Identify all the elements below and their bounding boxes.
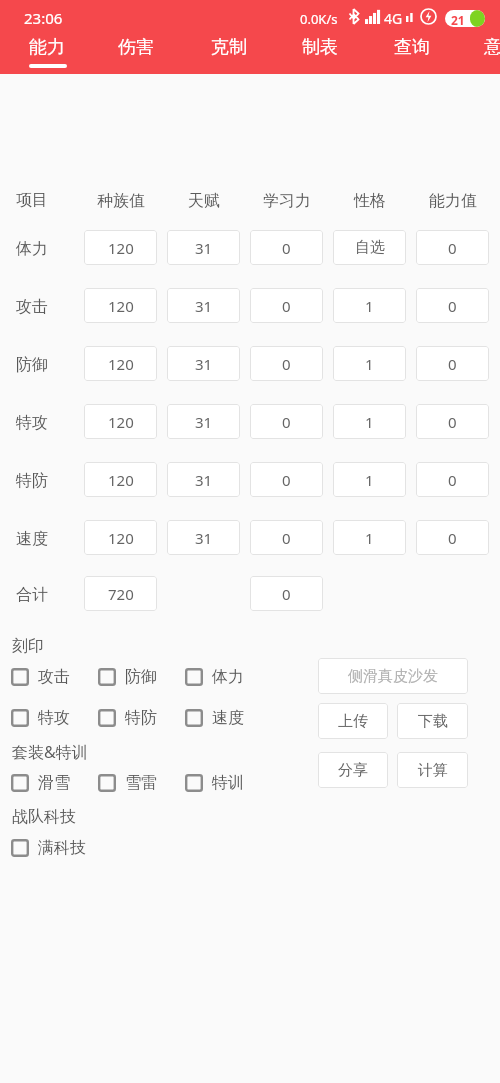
button[interactable]: 120 — [84, 404, 157, 439]
button[interactable]: 特攻 — [11, 708, 70, 728]
staticText: 0 — [282, 238, 291, 258]
button[interactable]: 意 — [482, 36, 500, 66]
button[interactable]: 120 — [84, 462, 157, 497]
staticText: 31 — [195, 238, 213, 258]
staticText: 0 — [282, 470, 291, 490]
staticText: 31 — [195, 412, 213, 432]
button[interactable]: 攻击 — [11, 667, 70, 687]
button[interactable]: 0 — [416, 230, 489, 265]
button[interactable]: 计算 — [397, 752, 468, 788]
staticText: 1 — [365, 412, 374, 432]
button[interactable]: 侧滑真皮沙发 — [318, 658, 468, 694]
staticText: 0 — [448, 238, 457, 258]
button[interactable]: 1 — [333, 462, 406, 497]
staticText: 0 — [282, 296, 291, 316]
button[interactable]: 0 — [250, 404, 323, 439]
staticText: 0 — [448, 528, 457, 548]
button[interactable]: 0 — [416, 462, 489, 497]
staticText: 滑雪 — [38, 773, 70, 793]
button[interactable]: 下载 — [397, 703, 468, 739]
button[interactable]: 0 — [250, 576, 323, 611]
staticText: 攻击 — [38, 667, 70, 687]
staticText: 攻击 — [16, 297, 48, 317]
button[interactable]: 31 — [167, 230, 240, 265]
button[interactable]: 查询 — [392, 36, 432, 66]
staticText: 0 — [282, 528, 291, 548]
staticText: 防御 — [125, 667, 157, 687]
staticText: 31 — [195, 354, 213, 374]
button[interactable]: 0 — [250, 520, 323, 555]
button[interactable]: 31 — [167, 462, 240, 497]
button[interactable]: 0 — [250, 346, 323, 381]
other: Signal — [365, 10, 381, 24]
staticText: 0 — [448, 412, 457, 432]
staticText: 120 — [108, 412, 134, 432]
button[interactable]: 特防 — [98, 708, 157, 728]
staticText: 1 — [365, 470, 374, 490]
button[interactable]: 120 — [84, 230, 157, 265]
button[interactable]: 伤害 — [116, 36, 156, 66]
staticText: 特防 — [125, 708, 157, 728]
button[interactable]: 0 — [416, 404, 489, 439]
button[interactable]: 31 — [167, 520, 240, 555]
staticText: 120 — [108, 296, 134, 316]
button[interactable]: 克制 — [209, 36, 249, 66]
button[interactable]: 0 — [416, 288, 489, 323]
button[interactable]: 满科技 — [11, 838, 86, 858]
staticText: 侧滑真皮沙发 — [348, 667, 438, 686]
button[interactable]: 0 — [416, 520, 489, 555]
staticText: 分享 — [338, 761, 368, 780]
button[interactable]: 31 — [167, 404, 240, 439]
button[interactable]: 上传 — [318, 703, 388, 739]
button[interactable]: 体力 — [185, 667, 244, 687]
button[interactable]: 1 — [333, 404, 406, 439]
staticText: 下载 — [418, 712, 448, 731]
staticText: 学习力 — [263, 191, 311, 211]
staticText: 0.0K/s — [300, 10, 338, 28]
staticText: 上传 — [338, 712, 368, 731]
staticText: 31 — [195, 470, 213, 490]
button[interactable]: 滑雪 — [11, 773, 70, 793]
button[interactable]: 120 — [84, 288, 157, 323]
button[interactable]: 自选 — [333, 230, 406, 265]
staticText: 120 — [108, 528, 134, 548]
staticText: 能力 — [29, 36, 65, 59]
button[interactable]: 120 — [84, 346, 157, 381]
staticText: 制表 — [302, 36, 338, 59]
button[interactable]: 120 — [84, 520, 157, 555]
staticText: 能力值 — [429, 191, 477, 211]
button[interactable]: 31 — [167, 288, 240, 323]
button[interactable]: 0 — [250, 230, 323, 265]
button[interactable]: 1 — [333, 288, 406, 323]
staticText: 特攻 — [38, 708, 70, 728]
button[interactable]: 0 — [250, 288, 323, 323]
button[interactable]: 1 — [333, 346, 406, 381]
button[interactable]: 分享 — [318, 752, 388, 788]
staticText: 1 — [365, 354, 374, 374]
staticText: 0 — [282, 584, 291, 604]
button[interactable]: 防御 — [98, 667, 157, 687]
staticText: 克制 — [211, 36, 247, 59]
button[interactable]: 720 — [84, 576, 157, 611]
staticText: 特防 — [16, 471, 48, 491]
button[interactable]: 雪雷 — [98, 773, 157, 793]
staticText: 性格 — [354, 191, 386, 211]
button[interactable]: 特训 — [185, 773, 244, 793]
staticText: 自选 — [355, 238, 385, 257]
button[interactable]: 1 — [333, 520, 406, 555]
staticText: 套装&特训 — [12, 741, 88, 763]
button[interactable]: 0 — [416, 346, 489, 381]
button[interactable]: 速度 — [185, 708, 244, 728]
button[interactable]: 0 — [250, 462, 323, 497]
staticText: 120 — [108, 238, 134, 258]
staticText: 伤害 — [118, 36, 154, 59]
staticText: 计算 — [418, 761, 448, 780]
button[interactable]: 31 — [167, 346, 240, 381]
staticText: 项目 — [16, 190, 48, 210]
button[interactable]: 制表 — [300, 36, 340, 66]
staticText: 31 — [195, 528, 213, 548]
staticText: 特攻 — [16, 413, 48, 433]
staticText: 0 — [448, 354, 457, 374]
staticText: 合计 — [16, 585, 48, 605]
button[interactable]: 能力 — [27, 36, 67, 66]
